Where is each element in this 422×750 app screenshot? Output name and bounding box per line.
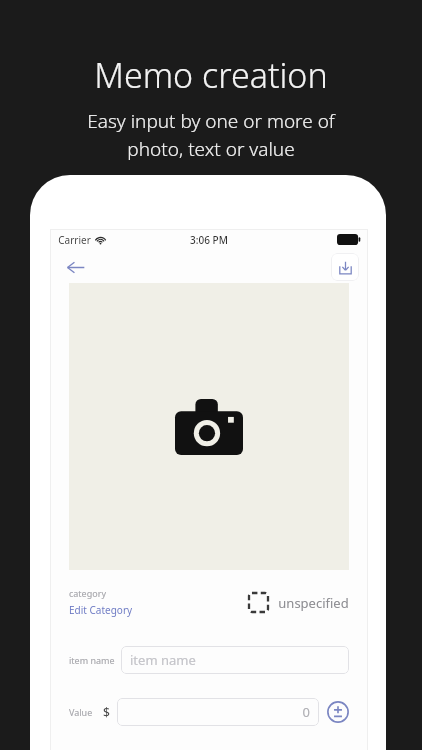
staticText: 3:06 PM xyxy=(190,233,228,247)
staticText: unspecified xyxy=(278,594,349,612)
staticText: Edit Category xyxy=(69,603,133,617)
button[interactable]: 0 xyxy=(117,698,319,726)
button[interactable]: Add photo xyxy=(69,283,349,570)
staticText: Carrier xyxy=(58,233,91,247)
staticText: 0 xyxy=(302,703,310,721)
button[interactable]: unspecified xyxy=(248,592,349,613)
button[interactable]: Save xyxy=(331,253,359,281)
staticText: Value xyxy=(69,706,99,718)
button[interactable]: item name xyxy=(121,646,349,674)
button[interactable]: Edit Category xyxy=(69,603,133,617)
staticText: Memo creation xyxy=(94,52,328,98)
button[interactable]: Back xyxy=(60,252,90,282)
staticText: $ xyxy=(103,704,110,720)
button[interactable]: Toggle sign xyxy=(327,701,349,723)
staticText: item name xyxy=(69,654,115,666)
staticText: Easy input by one or more of xyxy=(87,108,335,134)
staticText: item name xyxy=(130,651,196,669)
staticText: photo, text or value xyxy=(127,136,295,162)
staticText: category xyxy=(69,587,106,599)
